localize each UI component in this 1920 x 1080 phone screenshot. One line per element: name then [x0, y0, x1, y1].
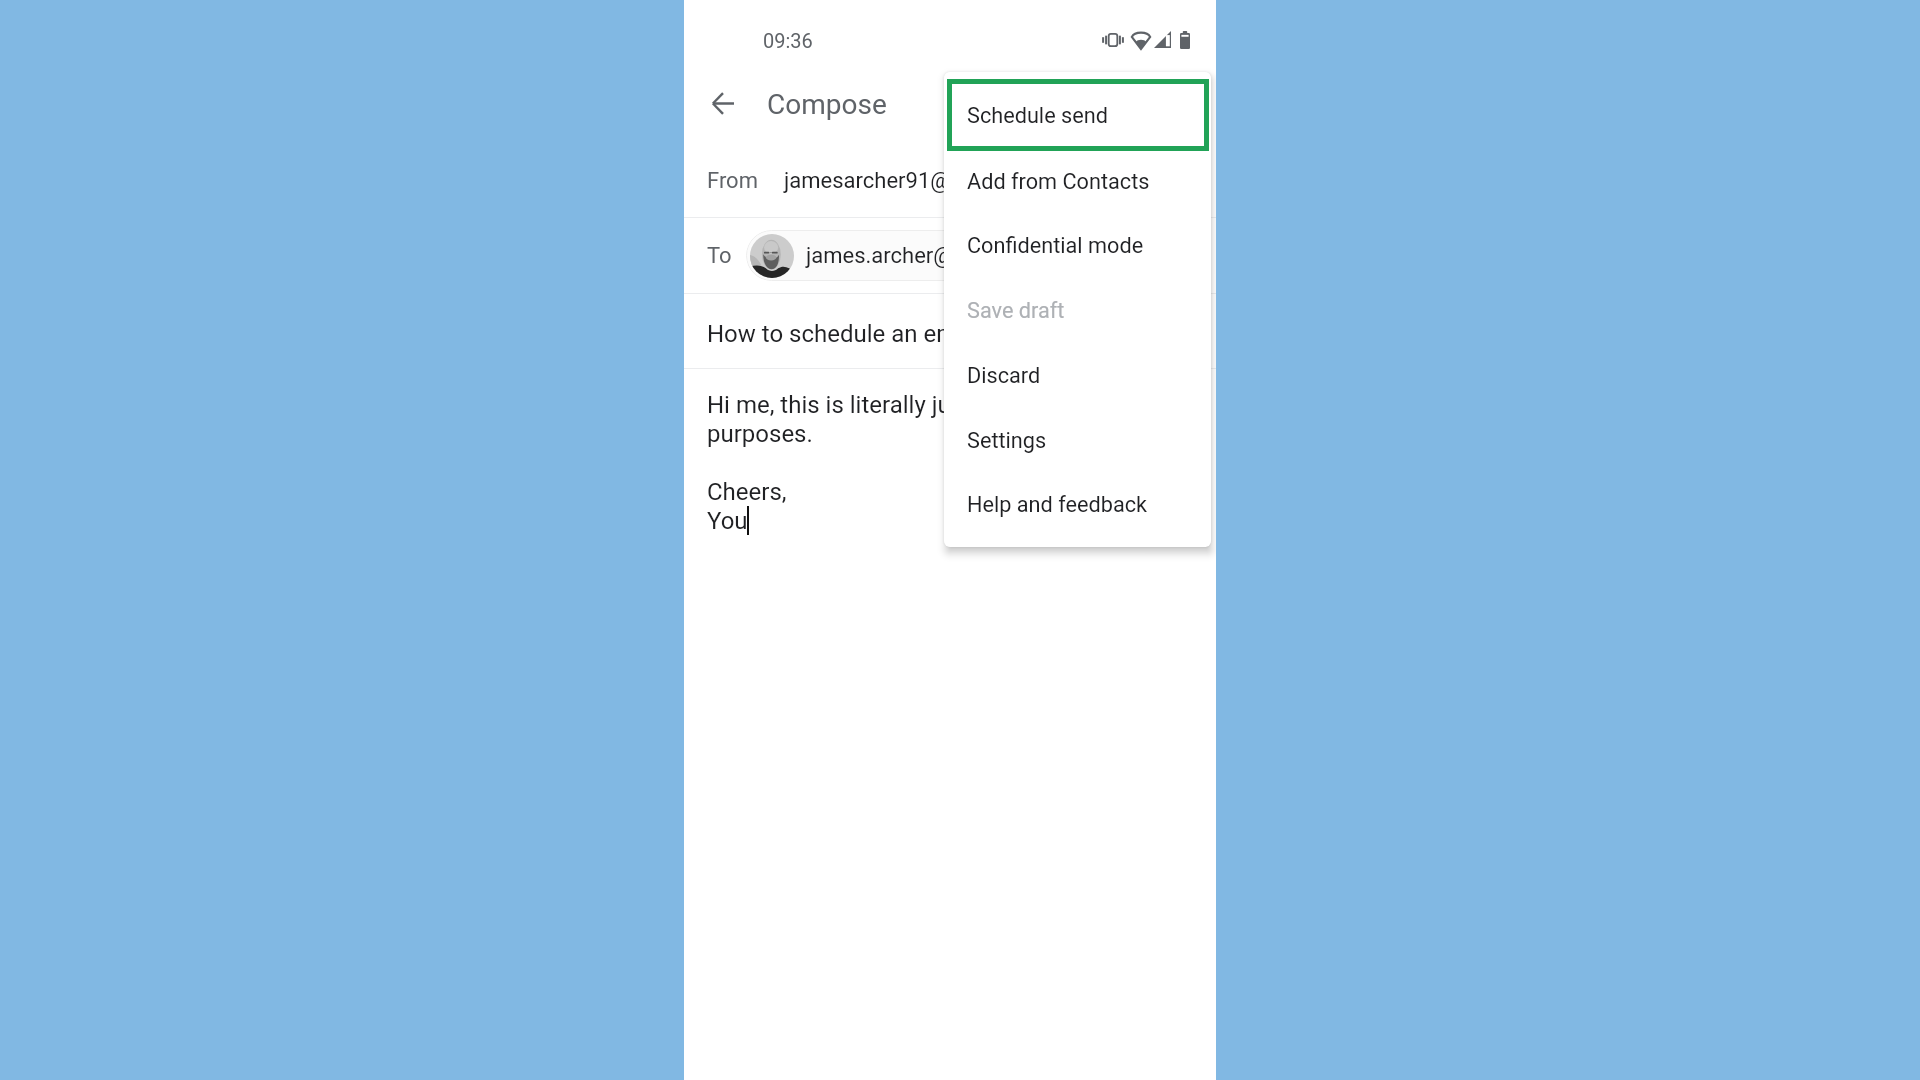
- staticText: Schedule send: [967, 103, 1108, 128]
- button[interactable]: Confidential mode: [944, 213, 1211, 278]
- button[interactable]: Schedule send: [944, 83, 1211, 148]
- staticText: Add from Contacts: [967, 169, 1150, 194]
- button[interactable]: Save draft: [944, 278, 1211, 343]
- staticText: jamesarcher91@gmail.com: [784, 168, 1054, 194]
- button[interactable]: Settings: [944, 408, 1211, 473]
- staticText: Confidential mode: [967, 233, 1144, 258]
- staticText: Settings: [967, 428, 1047, 453]
- staticText: Discard: [967, 363, 1041, 388]
- button[interactable]: To: [684, 218, 1216, 293]
- button[interactable]: Help and feedback: [944, 472, 1211, 537]
- staticText: james.archer@futurenet.com: [806, 243, 1092, 269]
- button[interactable]: From: [684, 144, 1216, 217]
- staticText: Save draft: [967, 298, 1065, 323]
- button[interactable]: james.archer@futurenet.com: [746, 230, 1166, 281]
- button[interactable]: Back: [699, 79, 747, 127]
- button[interactable]: How to schedule an email: [684, 294, 1216, 368]
- staticText: Hi me, this is literally just a test ema…: [707, 391, 1196, 535]
- button[interactable]: Add from Contacts: [944, 149, 1211, 214]
- staticText: Compose: [767, 88, 887, 121]
- staticText: To: [707, 243, 732, 269]
- staticText: 09:36: [763, 29, 813, 52]
- staticText: How to schedule an email: [707, 320, 982, 348]
- button[interactable]: Discard: [944, 343, 1211, 408]
- button[interactable]: Hi me, this is literally just a test ema…: [684, 369, 1196, 569]
- staticText: Help and feedback: [967, 492, 1148, 517]
- staticText: From: [707, 168, 758, 194]
